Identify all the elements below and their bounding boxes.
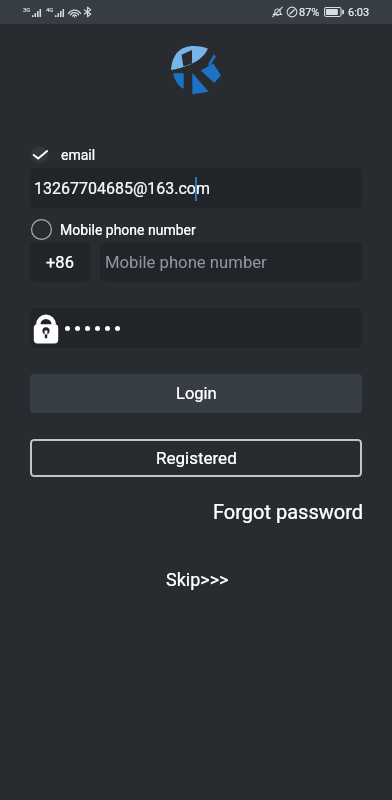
staticText: 3G (23, 6, 31, 13)
button[interactable]: email (28, 143, 96, 166)
staticText: 13267704685@163.com (34, 179, 211, 198)
staticText: Mobile phone number (105, 253, 267, 273)
button[interactable]: 13267704685@163.com (30, 168, 362, 208)
staticText: 4G (46, 6, 54, 13)
button[interactable]: Login (30, 374, 362, 413)
staticText: 87% (299, 6, 320, 19)
button[interactable]: Password (30, 308, 362, 348)
button[interactable]: +86 (30, 243, 90, 282)
staticText: 6:03 (348, 6, 370, 19)
staticText: Forgot password (213, 500, 364, 523)
staticText: Mobile phone number (60, 222, 196, 238)
staticText: email (61, 147, 96, 163)
button[interactable]: Mobile phone number (100, 243, 362, 282)
staticText: Login (176, 384, 217, 403)
button[interactable]: Mobile phone number (31, 218, 196, 241)
button[interactable]: Registered (30, 439, 362, 477)
staticText: +86 (46, 253, 74, 272)
button[interactable]: Skip>>> (158, 566, 237, 593)
staticText: Registered (156, 448, 237, 468)
button[interactable]: Forgot password (205, 497, 372, 526)
staticText: Skip>>> (166, 569, 229, 590)
